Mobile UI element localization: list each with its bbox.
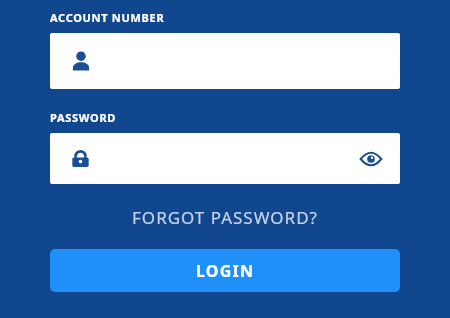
staticText: PASSWORD xyxy=(50,110,117,125)
staticText: FORGOT PASSWORD? xyxy=(50,206,400,229)
button[interactable]: Show password xyxy=(50,133,400,184)
button[interactable]: FORGOT PASSWORD? xyxy=(50,206,400,229)
staticText: LOGIN xyxy=(196,260,255,282)
button[interactable]: Show password xyxy=(358,146,384,172)
staticText: ACCOUNT NUMBER xyxy=(50,10,165,25)
button[interactable] xyxy=(50,33,400,89)
button[interactable]: LOGIN xyxy=(50,249,400,292)
